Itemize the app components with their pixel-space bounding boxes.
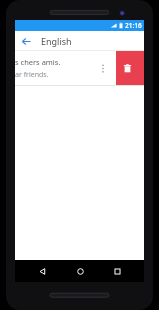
button[interactable]: Home	[69, 260, 91, 282]
button[interactable]: More options	[97, 62, 109, 74]
staticText: 21:16	[125, 21, 142, 30]
staticText: ar friends.	[15, 70, 49, 80]
staticText: English	[41, 35, 72, 47]
button[interactable]: Delete	[119, 60, 135, 76]
button[interactable]: Recent apps	[106, 260, 128, 282]
button[interactable]: s chers amis.	[15, 51, 116, 85]
button[interactable]: Back	[31, 260, 53, 282]
staticText: s chers amis.	[15, 57, 61, 67]
button[interactable]: Back	[19, 34, 33, 48]
